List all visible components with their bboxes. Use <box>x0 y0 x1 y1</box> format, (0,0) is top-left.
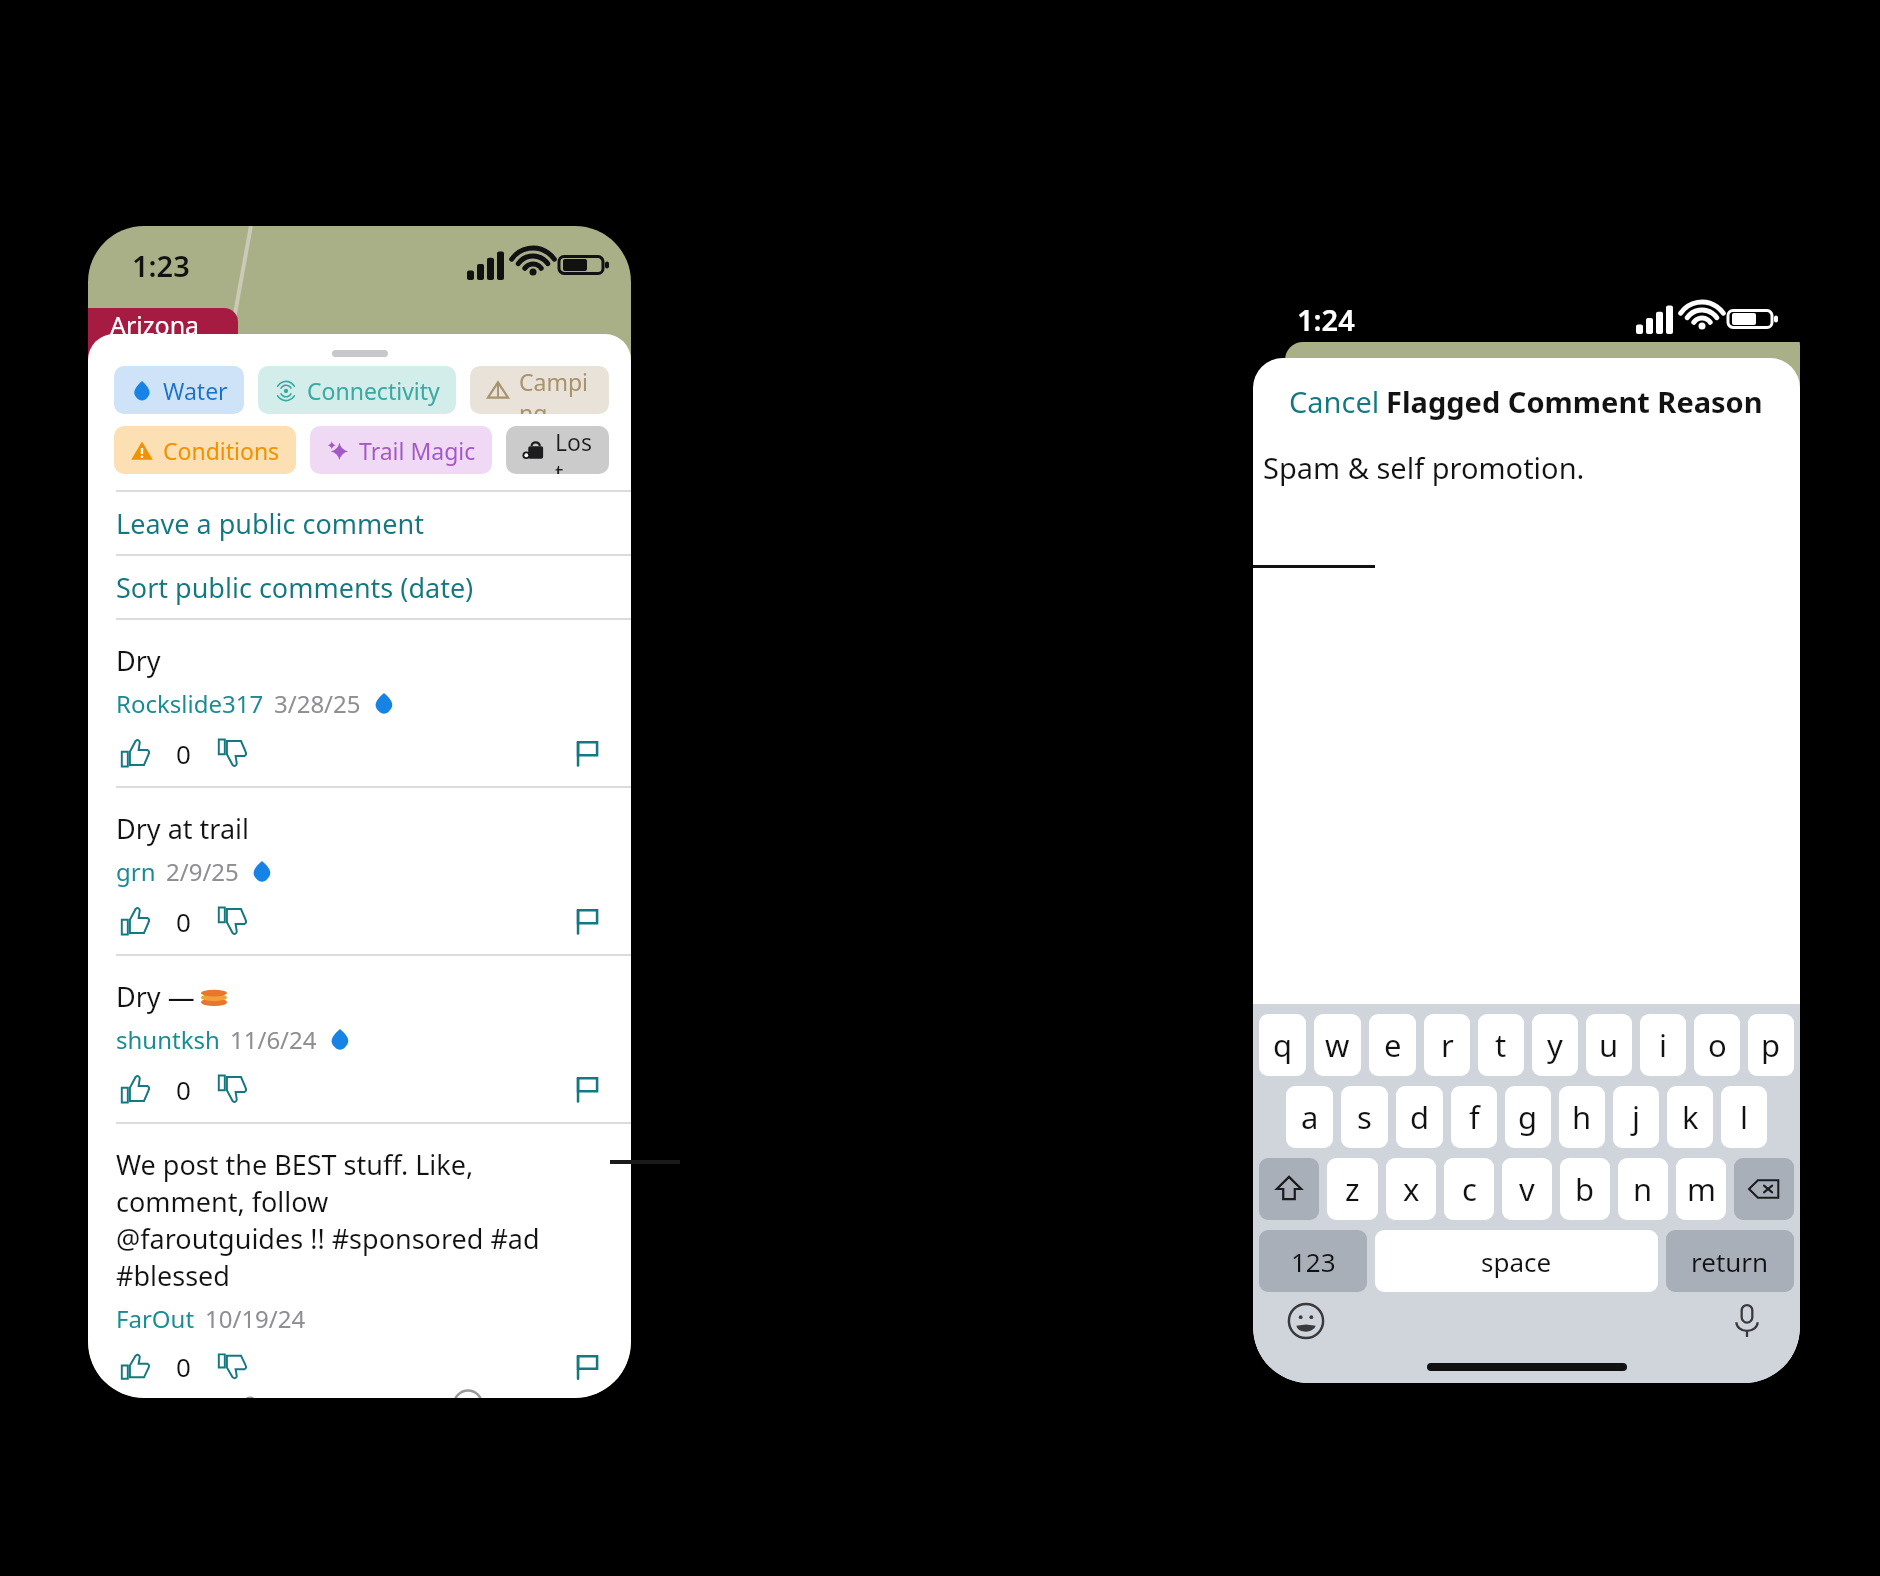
staticText: Trail Magic <box>359 435 476 466</box>
button[interactable]: d <box>1396 1086 1443 1148</box>
staticText: w <box>1325 1024 1350 1066</box>
staticText: Conditions <box>163 435 280 466</box>
staticText: j <box>1632 1096 1640 1138</box>
button[interactable]: u <box>1586 1014 1632 1076</box>
staticText: t <box>1495 1024 1507 1066</box>
staticText: FarOut <box>116 1302 195 1335</box>
button[interactable]: Dislike <box>213 1349 251 1384</box>
button[interactable]: Water <box>114 366 244 414</box>
staticText: o <box>1708 1024 1727 1066</box>
button[interactable]: m <box>1676 1158 1726 1220</box>
staticText: 10/19/24 <box>205 1302 306 1335</box>
button[interactable]: 123 <box>1259 1230 1367 1292</box>
staticText: 1:24 <box>1297 300 1355 339</box>
button[interactable]: h <box>1559 1086 1605 1148</box>
button[interactable]: Like <box>116 734 154 772</box>
button[interactable]: x <box>1386 1158 1436 1220</box>
button[interactable]: Dry <box>88 620 631 786</box>
staticText: Dry at trail <box>116 810 250 847</box>
staticText: Rockslide317 <box>116 687 264 720</box>
button[interactable]: b <box>1560 1158 1610 1220</box>
staticText: 1:23 <box>132 246 190 285</box>
button[interactable]: Dislike <box>213 734 251 772</box>
button[interactable]: space <box>1375 1230 1658 1292</box>
staticText: i <box>1659 1024 1667 1066</box>
staticText: Camping <box>519 366 593 414</box>
staticText: 0 <box>176 1072 191 1107</box>
button[interactable]: t <box>1478 1014 1524 1076</box>
button[interactable]: Flag comment <box>569 903 605 939</box>
button[interactable]: p <box>1748 1014 1794 1076</box>
staticText: 0 <box>176 736 191 771</box>
button[interactable]: n <box>1618 1158 1668 1220</box>
button[interactable]: Flag comment <box>569 735 605 771</box>
button[interactable]: r <box>1424 1014 1470 1076</box>
button[interactable]: Trail Magic <box>310 426 492 474</box>
button[interactable]: Emoji <box>1287 1302 1325 1340</box>
button[interactable]: Like <box>116 1070 154 1108</box>
button[interactable]: Dislike <box>213 902 251 940</box>
staticText: 0 <box>176 904 191 939</box>
staticText: a <box>1301 1096 1319 1138</box>
button[interactable]: Sort public comments (date) <box>88 556 631 618</box>
button[interactable]: a <box>1286 1086 1333 1148</box>
button[interactable]: Cancel <box>1283 376 1386 427</box>
button[interactable]: e <box>1369 1014 1416 1076</box>
staticText: l <box>1740 1096 1748 1138</box>
button[interactable]: Like <box>116 902 154 940</box>
button[interactable]: Dry at trail <box>88 788 631 954</box>
staticText: z <box>1345 1168 1360 1210</box>
button[interactable]: Leave a public comment <box>88 492 631 554</box>
staticText: Dry <box>116 642 161 679</box>
button[interactable]: Dry — <box>88 956 631 1122</box>
button[interactable]: s <box>1341 1086 1388 1148</box>
button[interactable]: v <box>1502 1158 1552 1220</box>
staticText: d <box>1410 1096 1430 1138</box>
button[interactable]: i <box>1640 1014 1686 1076</box>
staticText: We post the BEST stuff. Like, comment, f… <box>116 1146 605 1294</box>
button[interactable]: l <box>1721 1086 1767 1148</box>
staticText: p <box>1761 1024 1781 1066</box>
button[interactable]: Backspace <box>1734 1158 1794 1220</box>
staticText: Arizona Trail <box>110 308 238 368</box>
button[interactable]: Flag comment <box>569 1349 605 1384</box>
staticText: x <box>1403 1168 1420 1210</box>
button[interactable]: Dislike <box>213 1070 251 1108</box>
staticText: shuntksh <box>116 1023 220 1056</box>
button[interactable]: Lost-N-Found <box>506 426 609 474</box>
button[interactable]: k <box>1667 1086 1713 1148</box>
button[interactable]: Camping <box>470 366 609 414</box>
button[interactable]: c <box>1444 1158 1494 1220</box>
staticText: q <box>1273 1024 1293 1066</box>
button[interactable]: g <box>1505 1086 1551 1148</box>
staticText: r <box>1441 1024 1454 1066</box>
staticText: Leave a public comment <box>116 505 424 542</box>
button[interactable]: y <box>1532 1014 1578 1076</box>
staticText: h <box>1572 1096 1592 1138</box>
staticText: e <box>1384 1024 1402 1066</box>
button[interactable]: Connectivity <box>258 366 456 414</box>
staticText: Flagged Comment Reason <box>1386 382 1763 421</box>
button[interactable]: j <box>1613 1086 1659 1148</box>
button[interactable]: Conditions <box>114 426 296 474</box>
staticText: Water <box>163 375 228 406</box>
button[interactable]: z <box>1327 1158 1378 1220</box>
staticText: Sort public comments (date) <box>116 569 474 606</box>
button[interactable]: Like <box>116 1349 154 1384</box>
staticText: c <box>1462 1168 1477 1210</box>
button[interactable]: We post the BEST stuff. Like, comment, f… <box>88 1124 631 1398</box>
button[interactable]: Shift <box>1259 1158 1319 1220</box>
button[interactable]: w <box>1314 1014 1361 1076</box>
button[interactable]: q <box>1259 1014 1306 1076</box>
button[interactable]: o <box>1694 1014 1740 1076</box>
staticText: v <box>1519 1168 1535 1210</box>
button[interactable]: return <box>1666 1230 1794 1292</box>
staticText: Cancel <box>1289 382 1380 421</box>
button[interactable]: Flag comment <box>569 1071 605 1107</box>
staticText: Dry — <box>116 978 195 1015</box>
button[interactable]: f <box>1451 1086 1497 1148</box>
staticText: 0 <box>176 1349 191 1384</box>
staticText: return <box>1691 1244 1769 1279</box>
button[interactable]: Dictate <box>1728 1302 1766 1340</box>
